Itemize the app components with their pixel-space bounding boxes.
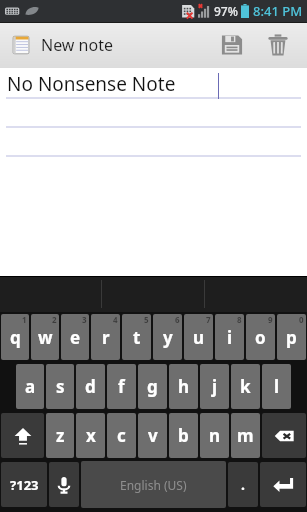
button[interactable]: y [153,314,182,360]
button[interactable]: n [200,413,229,458]
staticText: j [212,375,218,398]
staticText: ?123 [10,476,39,494]
button[interactable]: No Nonsense Note [0,68,307,276]
staticText: z [56,424,65,447]
staticText: d [85,375,96,398]
staticText: 2 [52,314,57,325]
button[interactable]: v [138,413,167,458]
staticText: o [255,326,266,349]
staticText: 97% [214,3,238,19]
staticText: 6 [175,314,180,325]
staticText: 5 [144,314,149,325]
staticText: p [286,326,297,349]
button[interactable]: r [91,314,120,360]
staticText: w [38,326,53,349]
button[interactable]: o [246,314,275,360]
button[interactable]: p [277,314,306,360]
staticText: e [70,326,81,349]
staticText: b [178,424,189,447]
button[interactable]: z [46,413,74,458]
button[interactable]: . [228,462,258,507]
staticText: New note [41,34,113,56]
staticText: . [241,475,245,494]
staticText: i [227,326,233,349]
button[interactable]: s [46,364,74,409]
button[interactable]: a [16,364,44,409]
staticText: 8 [237,314,242,325]
button[interactable]: u [184,314,213,360]
staticText: k [240,375,251,398]
staticText: English (US) [120,477,187,493]
button[interactable] [102,276,204,312]
button[interactable]: Shift [1,413,44,458]
staticText: y [163,326,173,349]
button[interactable] [0,276,101,312]
button[interactable]: Enter [260,462,306,507]
staticText: g [147,375,158,398]
staticText: No Nonsense Note [7,71,176,97]
staticText: f [118,375,125,398]
staticText: t [133,326,141,349]
button[interactable]: Delete [255,22,301,68]
staticText: s [56,375,65,398]
button[interactable]: Voice input [49,462,79,507]
button[interactable]: c [107,413,136,458]
staticText: m [237,424,254,447]
staticText: l [274,375,280,398]
staticText: 8:41 PM [253,2,303,20]
staticText: 7 [206,314,211,325]
button[interactable]: m [231,413,260,458]
staticText: q [10,326,21,349]
staticText: 0 [299,314,304,325]
button[interactable]: w [31,314,59,360]
button[interactable]: q [1,314,29,360]
staticText: 1 [22,314,27,325]
staticText: h [178,375,190,398]
button[interactable]: ?123 [1,462,47,507]
button[interactable]: Save [209,22,255,68]
button[interactable]: t [122,314,151,360]
button[interactable]: b [169,413,198,458]
button[interactable]: f [107,364,136,409]
button[interactable]: e [61,314,89,360]
button[interactable]: English (US) [81,461,226,508]
staticText: 4 [113,314,118,325]
button[interactable]: d [76,364,105,409]
button[interactable]: h [169,364,198,409]
staticText: a [25,375,36,398]
button[interactable]: l [262,364,291,409]
button[interactable]: i [215,314,244,360]
staticText: x [86,424,96,447]
staticText: n [209,424,221,447]
staticText: v [148,424,158,447]
button[interactable]: k [231,364,260,409]
button[interactable]: x [76,413,105,458]
button[interactable]: j [200,364,229,409]
button[interactable]: Backspace [262,413,306,458]
button[interactable]: New note [10,22,209,68]
button[interactable] [205,276,307,312]
staticText: u [193,326,205,349]
staticText: 3 [82,314,87,325]
staticText: c [117,424,126,447]
staticText: r [102,326,110,349]
button[interactable]: g [138,364,167,409]
staticText: 9 [268,314,273,325]
